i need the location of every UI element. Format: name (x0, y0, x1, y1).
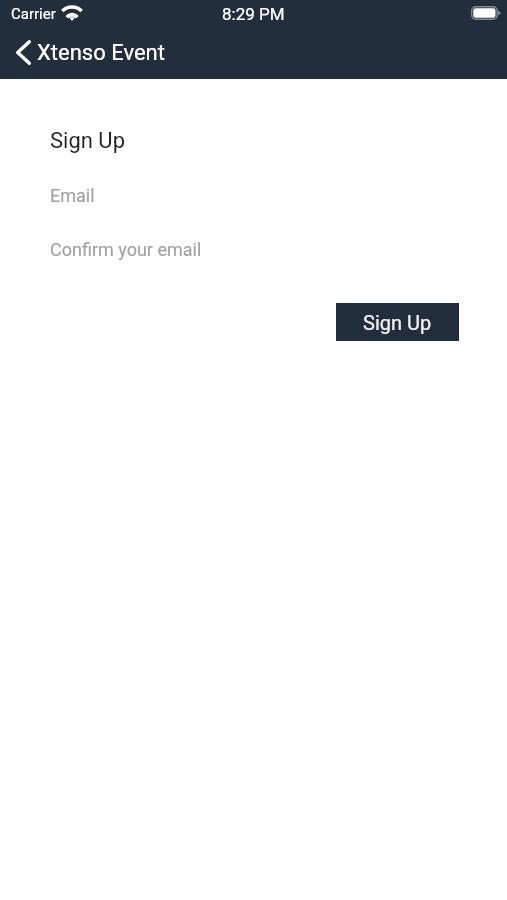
staticText: Carrier (11, 5, 56, 23)
staticText: Sign Up (363, 311, 432, 334)
staticText: Confirm your email (50, 239, 202, 260)
button[interactable]: Back (0, 26, 164, 79)
staticText: Xtenso Event (37, 40, 165, 66)
staticText: Sign Up (50, 128, 125, 154)
staticText: 8:29 PM (222, 4, 285, 24)
button[interactable]: Sign Up (336, 303, 459, 341)
other: Back (0, 26, 36, 79)
staticText: Email (50, 185, 95, 206)
